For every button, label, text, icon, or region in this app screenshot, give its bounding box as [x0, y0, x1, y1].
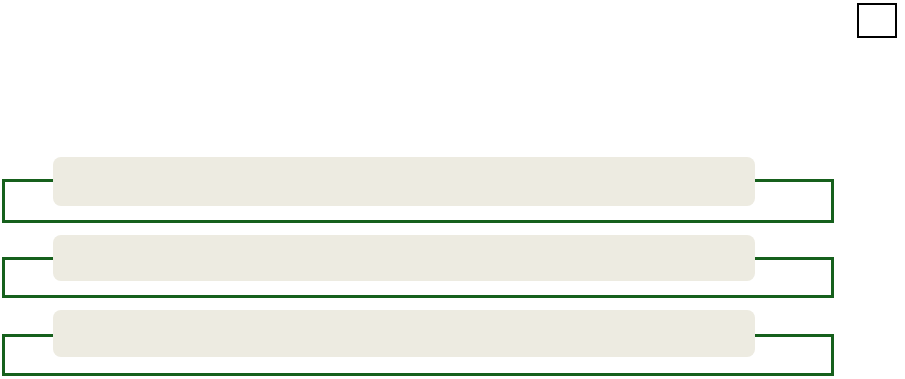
- button[interactable]: List row 1: [2, 179, 834, 223]
- button[interactable]: Marker: [857, 3, 897, 38]
- button[interactable]: List row 3: [2, 334, 834, 376]
- button[interactable]: List row 2: [2, 257, 834, 298]
